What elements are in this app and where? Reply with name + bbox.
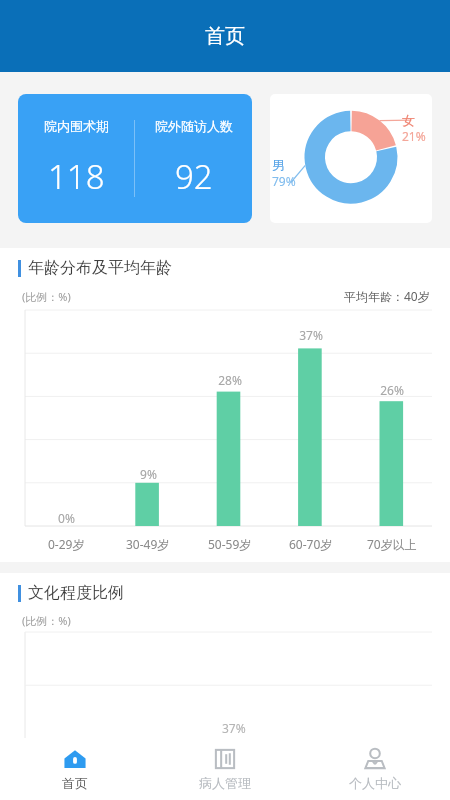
staticText: 文化程度比例 <box>28 583 124 603</box>
staticText: 女 <box>402 112 415 128</box>
button[interactable]: 女 <box>270 94 432 223</box>
button[interactable]: 首页 <box>0 738 150 800</box>
staticText: 年龄分布及平均年龄 <box>28 258 172 278</box>
staticText: 26% <box>380 382 404 398</box>
button[interactable]: 个人中心 <box>300 738 450 800</box>
staticText: 21% <box>402 128 426 144</box>
staticText: 男 <box>272 157 285 173</box>
staticText: 60-70岁 <box>289 536 333 552</box>
staticText: 28% <box>218 372 242 388</box>
staticText: 70岁以上 <box>367 536 417 552</box>
staticText: (比例：%) <box>22 289 71 304</box>
staticText: 平均年龄：40岁 <box>344 288 430 304</box>
staticText: 首页 <box>205 24 245 49</box>
staticText: 首页 <box>62 775 88 791</box>
staticText: 50-59岁 <box>208 536 252 552</box>
staticText: 0-29岁 <box>48 536 85 552</box>
staticText: 37% <box>299 327 323 343</box>
staticText: 37% <box>222 720 246 736</box>
button[interactable]: 病人管理 <box>150 738 300 800</box>
staticText: 0% <box>58 510 75 526</box>
staticText: (比例：%) <box>22 613 71 628</box>
button[interactable]: 院内围术期 <box>18 94 252 223</box>
staticText: 92 <box>175 154 213 199</box>
staticText: 30-49岁 <box>126 536 170 552</box>
staticText: 9% <box>140 466 157 482</box>
staticText: 院内围术期 <box>44 118 109 134</box>
staticText: 个人中心 <box>349 775 401 791</box>
staticText: 118 <box>48 154 105 199</box>
staticText: 79% <box>272 173 296 189</box>
staticText: 病人管理 <box>199 775 251 791</box>
staticText: 院外随访人数 <box>155 118 233 134</box>
